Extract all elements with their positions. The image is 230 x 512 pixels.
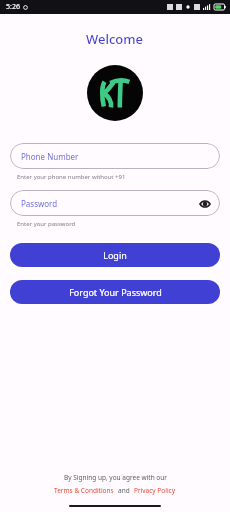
staticText: Enter your password xyxy=(17,220,76,228)
staticText: Privacy Policy xyxy=(134,486,176,495)
button[interactable]: Password xyxy=(10,190,220,216)
staticText: Forgot Your Password xyxy=(69,286,162,298)
staticText: By Signing up, you agree with our xyxy=(64,473,167,482)
button[interactable]: Login xyxy=(10,243,220,267)
button[interactable]: Forgot Your Password xyxy=(10,280,220,304)
button[interactable]: Phone Number xyxy=(10,143,220,169)
staticText: Login xyxy=(103,249,127,261)
button[interactable]: Show password xyxy=(198,197,211,210)
staticText: Terms & Conditions xyxy=(54,486,114,495)
staticText: and xyxy=(118,486,130,495)
staticText: Welcome xyxy=(86,30,144,48)
button[interactable]: Terms & Conditions xyxy=(54,486,114,495)
staticText: 5:26 xyxy=(6,2,20,12)
staticText: Password xyxy=(21,198,58,209)
button[interactable]: Privacy Policy xyxy=(134,486,176,495)
staticText: Enter your phone number without +91 xyxy=(17,173,126,181)
staticText: Phone Number xyxy=(21,151,79,162)
